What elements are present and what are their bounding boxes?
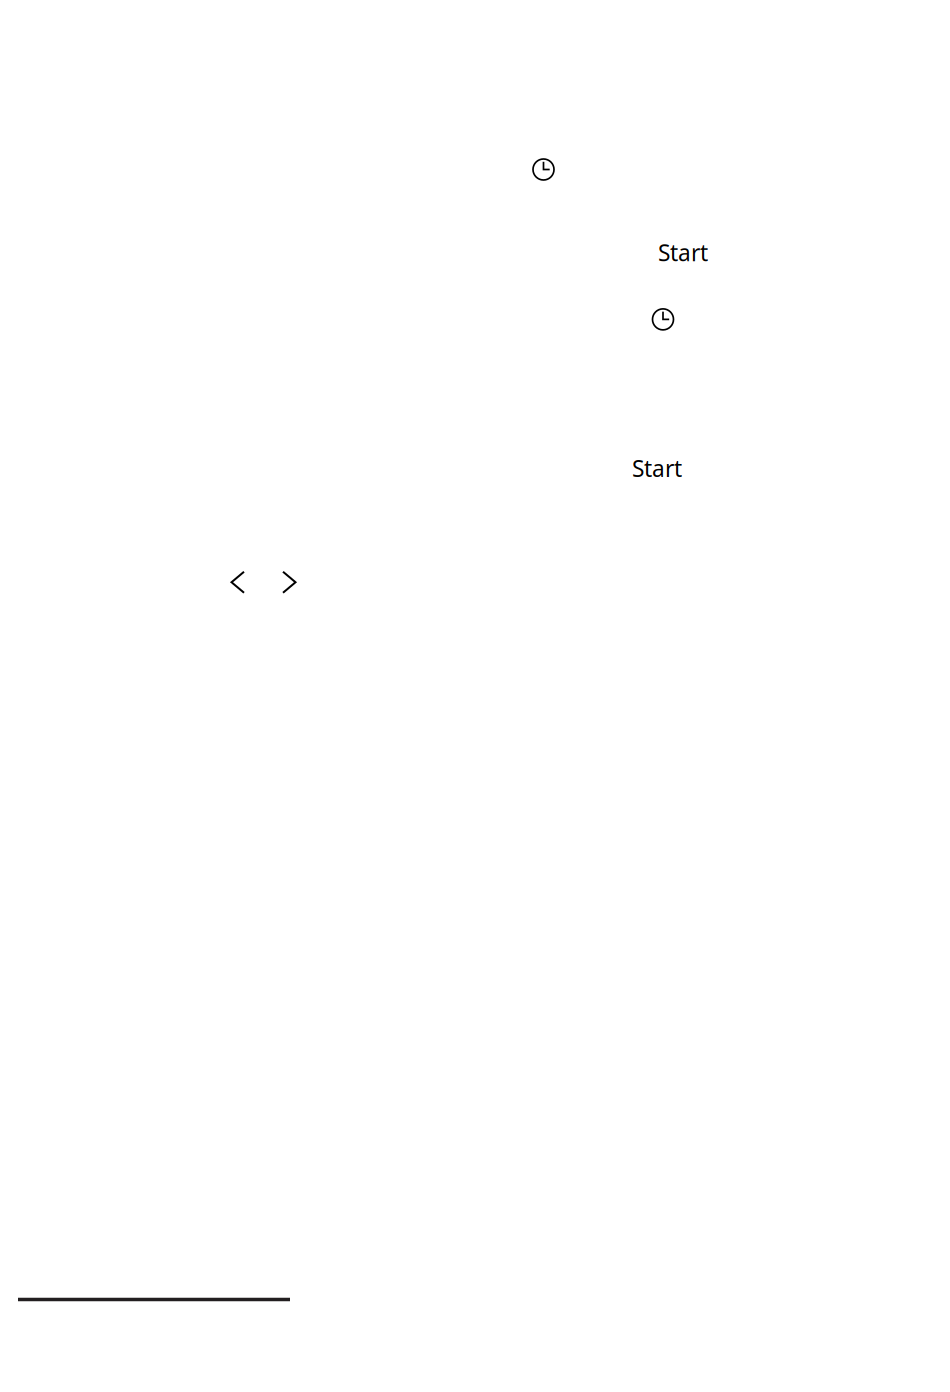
button[interactable]: Next xyxy=(282,571,296,594)
button[interactable]: Start xyxy=(632,453,682,484)
staticText: Start xyxy=(632,453,682,484)
staticText: Start xyxy=(658,237,708,268)
button[interactable]: Start xyxy=(658,237,708,268)
button[interactable]: Previous xyxy=(230,571,245,594)
